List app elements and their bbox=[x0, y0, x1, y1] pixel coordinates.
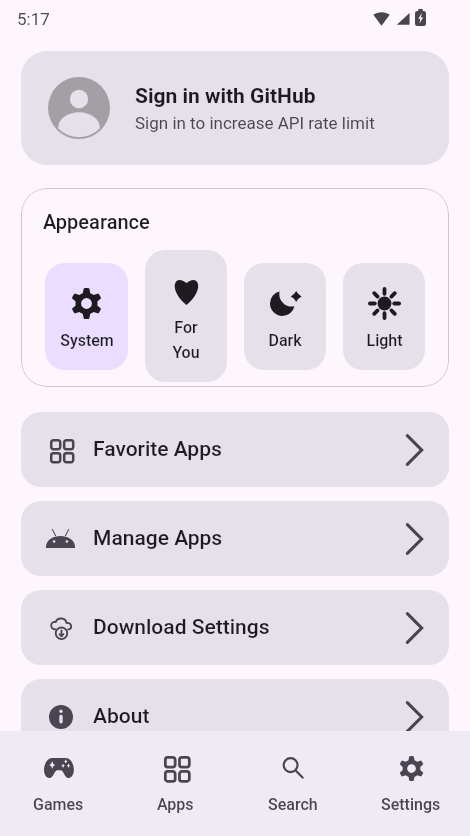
staticText: Sign in with GitHub bbox=[135, 84, 316, 109]
button[interactable]: Games bbox=[0, 731, 117, 836]
button[interactable]: Dark bbox=[244, 263, 326, 370]
staticText: Download Settings bbox=[93, 615, 406, 640]
button[interactable]: Favorite Apps bbox=[21, 412, 449, 487]
staticText: Manage Apps bbox=[93, 526, 406, 551]
button[interactable]: Settings bbox=[352, 731, 470, 836]
button[interactable]: For You bbox=[145, 250, 227, 382]
staticText: 5:17 bbox=[17, 9, 50, 29]
button[interactable]: Search bbox=[234, 731, 352, 836]
staticText: Light bbox=[366, 331, 403, 350]
button[interactable]: Light bbox=[343, 263, 425, 370]
staticText: Sign in to increase API rate limit bbox=[135, 113, 375, 133]
staticText: For You bbox=[172, 318, 200, 362]
staticText: System bbox=[60, 331, 114, 350]
staticText: Settings bbox=[381, 795, 441, 814]
staticText: Appearance bbox=[43, 210, 150, 233]
button[interactable]: Sign in with GitHub bbox=[21, 51, 449, 165]
staticText: Games bbox=[33, 795, 84, 814]
button[interactable]: Download Settings bbox=[21, 590, 449, 665]
button[interactable]: Manage Apps bbox=[21, 501, 449, 576]
staticText: Favorite Apps bbox=[93, 437, 406, 462]
staticText: Dark bbox=[268, 331, 302, 350]
button[interactable]: About bbox=[21, 679, 449, 754]
button[interactable]: System bbox=[45, 263, 128, 370]
staticText: About bbox=[93, 704, 406, 729]
staticText: Search bbox=[268, 795, 318, 814]
button[interactable]: Apps bbox=[117, 731, 234, 836]
staticText: Apps bbox=[157, 795, 194, 814]
